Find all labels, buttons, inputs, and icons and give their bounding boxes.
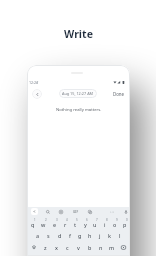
button[interactable]: Stickers — [57, 208, 64, 215]
staticText: 12:27 — [29, 80, 39, 85]
staticText: Write — [64, 27, 93, 41]
button[interactable]: l — [115, 228, 125, 240]
button[interactable]: 9 — [110, 217, 120, 229]
button[interactable]: 6 — [80, 217, 90, 229]
staticText: f — [69, 232, 71, 239]
button[interactable]: Translate — [86, 208, 93, 215]
staticText: s — [47, 232, 50, 239]
button[interactable]: Done — [110, 89, 127, 98]
button[interactable]: 0 — [120, 217, 130, 229]
staticText: 8 — [106, 218, 108, 222]
staticText: g — [78, 232, 82, 239]
button[interactable]: More options — [108, 208, 115, 215]
staticText: k — [108, 232, 112, 239]
staticText: v — [77, 244, 80, 251]
button[interactable]: j — [95, 228, 105, 240]
staticText: p — [123, 221, 127, 228]
staticText: Aug 15, 12:27 AM — [62, 91, 94, 96]
staticText: a — [36, 232, 40, 239]
button[interactable]: c — [62, 241, 73, 253]
button[interactable]: x — [51, 241, 62, 253]
staticText: r — [64, 221, 67, 228]
button[interactable]: h — [85, 228, 95, 240]
button[interactable]: Backspace — [117, 241, 130, 253]
button[interactable]: Close suggestions — [31, 208, 38, 215]
staticText: i — [104, 221, 106, 228]
staticText: w — [41, 221, 46, 228]
staticText: h — [88, 232, 92, 239]
staticText: q — [31, 221, 35, 228]
button[interactable]: s — [43, 228, 54, 240]
button[interactable]: g — [75, 228, 85, 240]
staticText: c — [66, 244, 69, 251]
button[interactable]: v — [73, 241, 84, 253]
staticText: t — [74, 221, 77, 228]
staticText: d — [58, 232, 62, 239]
staticText: 6 — [86, 218, 88, 222]
staticText: 3 — [56, 218, 58, 222]
staticText: m — [109, 244, 115, 251]
staticText: 1 — [34, 218, 36, 222]
button[interactable]: n — [95, 241, 106, 253]
staticText: z — [44, 244, 47, 251]
button[interactable]: f — [65, 228, 75, 240]
staticText: o — [113, 221, 117, 228]
button[interactable]: 2 — [38, 217, 49, 229]
staticText: Nothing really matters. — [56, 107, 102, 113]
staticText: l — [119, 232, 121, 239]
button[interactable]: Voice input — [122, 208, 129, 215]
staticText: 7 — [96, 218, 98, 222]
button[interactable]: 4 — [60, 217, 70, 229]
staticText: 5 — [76, 218, 78, 222]
staticText: 2 — [45, 218, 47, 222]
staticText: 0 — [126, 218, 128, 222]
button[interactable]: 1 — [27, 217, 38, 229]
button[interactable]: b — [84, 241, 95, 253]
staticText: GIF — [73, 210, 79, 214]
staticText: 9 — [116, 218, 118, 222]
button[interactable]: 8 — [100, 217, 110, 229]
button[interactable]: 7 — [90, 217, 100, 229]
staticText: n — [99, 244, 103, 251]
button[interactable]: 5 — [70, 217, 80, 229]
staticText: u — [93, 221, 97, 228]
staticText: b — [88, 244, 92, 251]
button[interactable]: 3 — [49, 217, 60, 229]
button[interactable]: Search — [44, 208, 51, 215]
staticText: y — [84, 221, 87, 228]
button[interactable]: Shift — [27, 241, 40, 253]
button[interactable]: a — [32, 228, 43, 240]
button[interactable]: GIF — [71, 208, 80, 215]
button[interactable]: Back — [32, 89, 42, 99]
staticText: 4 — [66, 218, 68, 222]
staticText: e — [53, 221, 57, 228]
staticText: x — [55, 244, 58, 251]
button[interactable]: z — [40, 241, 51, 253]
button[interactable]: k — [105, 228, 115, 240]
staticText: Done — [113, 91, 125, 97]
button[interactable]: Aug 15, 12:27 AM — [59, 89, 97, 98]
button[interactable]: m — [106, 241, 117, 253]
staticText: j — [99, 232, 101, 239]
button[interactable]: d — [54, 228, 65, 240]
